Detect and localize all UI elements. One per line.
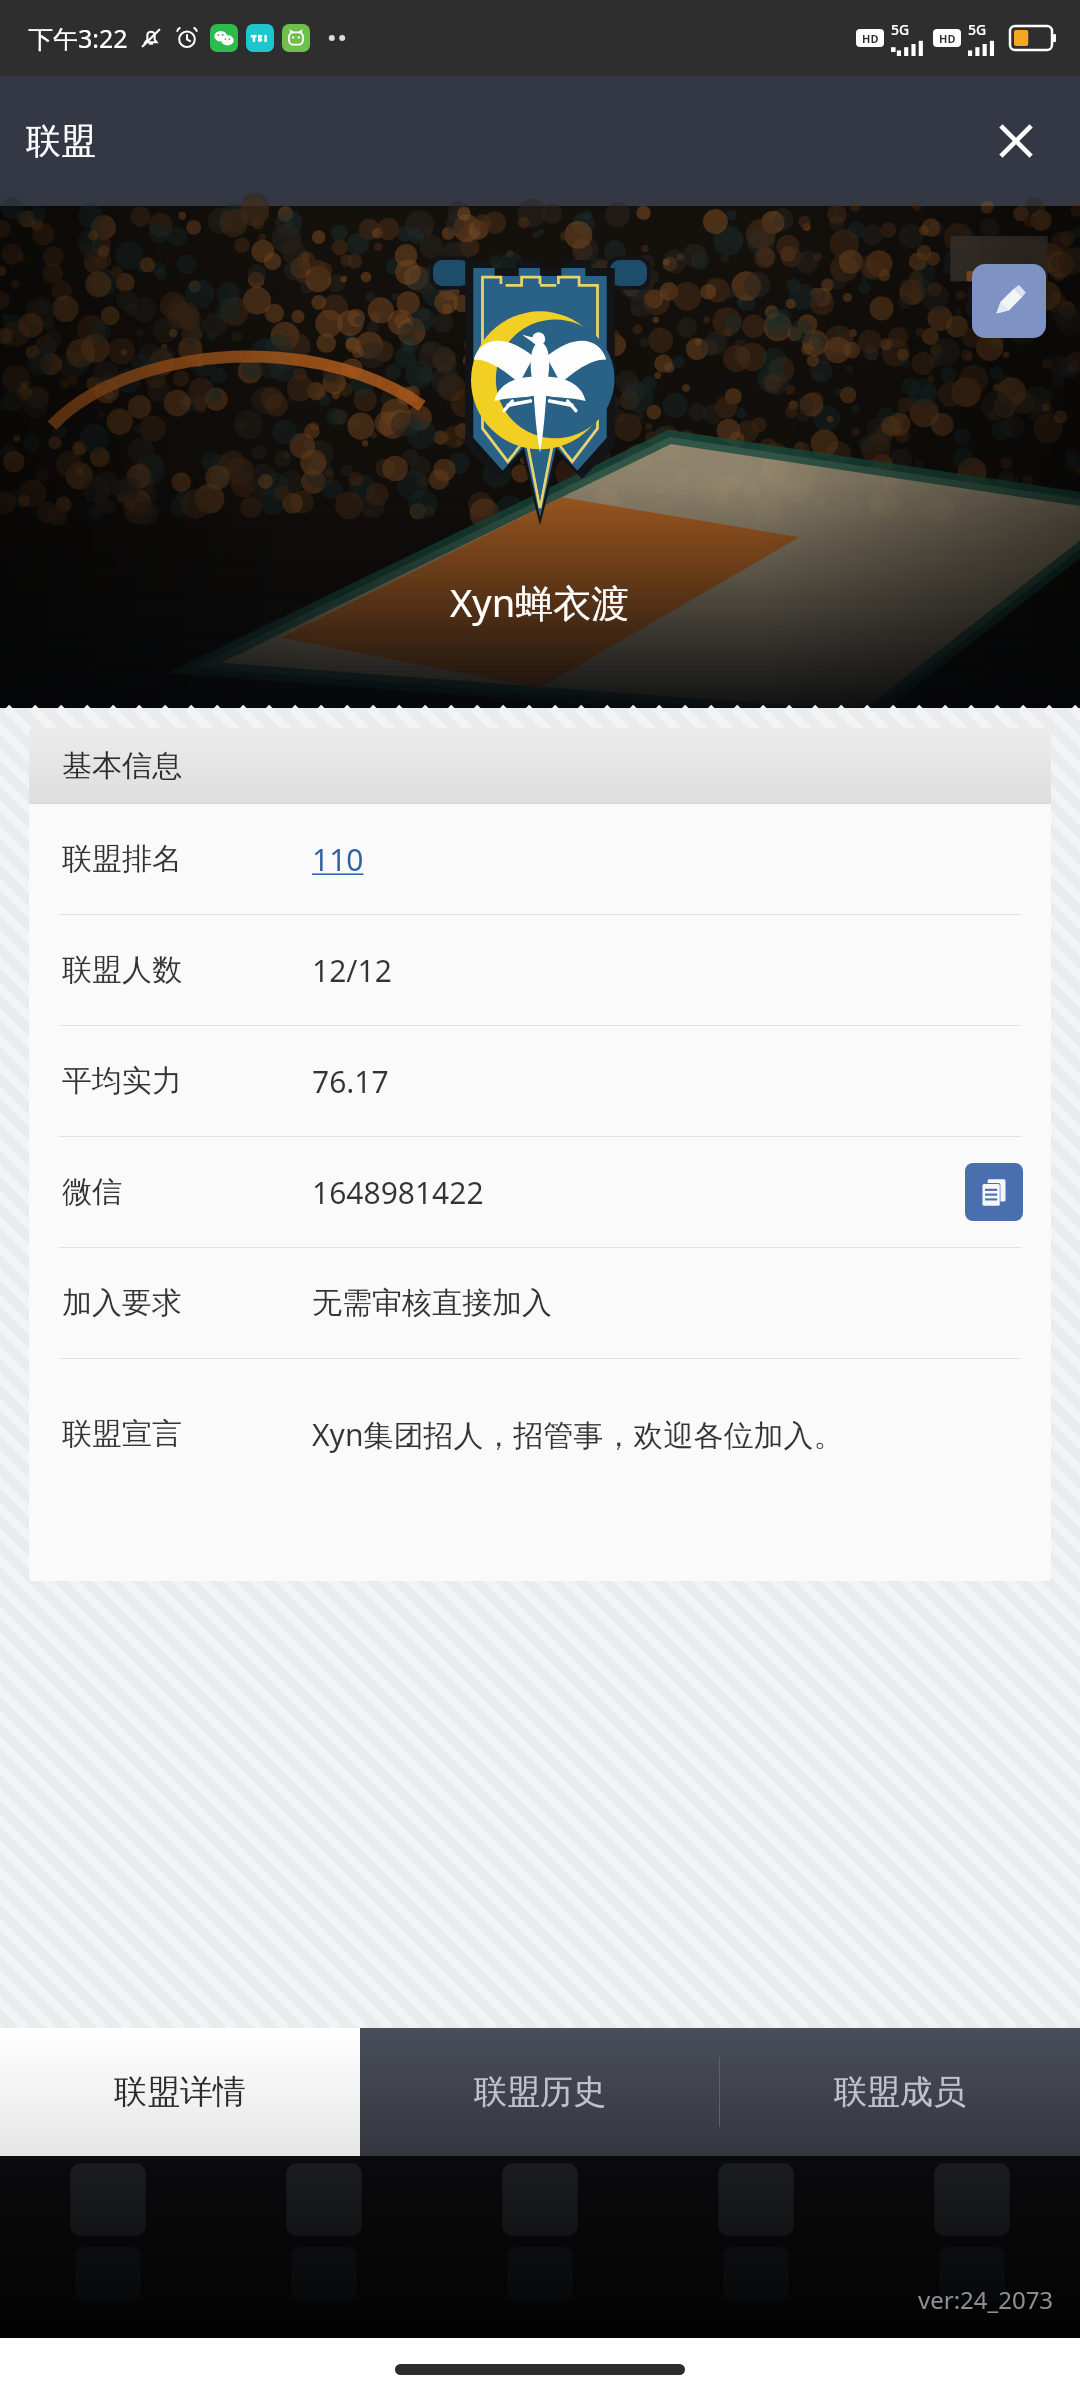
- staticText: 联盟详情: [114, 2071, 246, 2113]
- button[interactable]: 110: [312, 839, 364, 880]
- button[interactable]: 联盟历史: [360, 2028, 719, 2156]
- button[interactable]: 联盟排名: [29, 804, 1051, 914]
- staticText: 联盟成员: [834, 2071, 966, 2113]
- staticText: 联盟排名: [62, 840, 262, 878]
- button[interactable]: 编辑: [972, 264, 1046, 338]
- button[interactable]: 加入要求: [29, 1248, 1051, 1358]
- staticText: 加入要求: [62, 1284, 262, 1322]
- staticText: 1648981422: [312, 1172, 484, 1213]
- staticText: Xyn蝉衣渡: [450, 576, 630, 628]
- button[interactable]: 微信: [29, 1137, 1051, 1247]
- button[interactable]: 联盟人数: [29, 915, 1051, 1025]
- staticText: 12/12: [312, 950, 392, 991]
- button[interactable]: 联盟成员: [720, 2028, 1080, 2156]
- staticText: 联盟历史: [474, 2071, 606, 2113]
- staticText: 联盟: [26, 119, 96, 163]
- staticText: 76.17: [312, 1061, 389, 1102]
- staticText: Xyn集团招人，招管事，欢迎各位加入。: [312, 1414, 844, 1455]
- staticText: 基本信息: [62, 747, 182, 785]
- staticText: 联盟宣言: [62, 1415, 262, 1453]
- staticText: ver:24_2073: [918, 2283, 1054, 2316]
- button[interactable]: 联盟宣言: [29, 1359, 1051, 1509]
- staticText: 微信: [62, 1173, 262, 1211]
- staticText: 无需审核直接加入: [312, 1284, 552, 1322]
- staticText: 5G: [891, 20, 910, 39]
- staticText: 5G: [968, 20, 987, 39]
- button[interactable]: 关闭: [972, 97, 1060, 185]
- button[interactable]: 平均实力: [29, 1026, 1051, 1136]
- staticText: 平均实力: [62, 1062, 262, 1100]
- staticText: HD: [939, 31, 956, 46]
- staticText: HD: [862, 31, 879, 46]
- staticText: 联盟人数: [62, 951, 262, 989]
- button[interactable]: 复制微信号: [965, 1163, 1023, 1221]
- button[interactable]: 联盟详情: [0, 2028, 360, 2156]
- staticText: 下午3:22: [28, 21, 128, 55]
